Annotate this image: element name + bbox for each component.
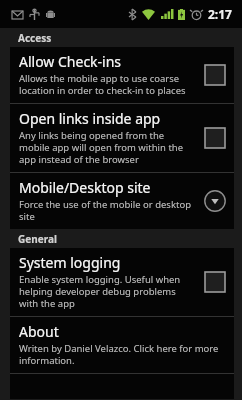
staticText: Open links inside app (19, 109, 161, 128)
button[interactable]: System logging (10, 248, 234, 316)
staticText: Enable system logging. Useful when helpi… (19, 273, 196, 310)
button[interactable]: Toggle setting (202, 125, 228, 151)
staticText: Writen by Daniel Velazco. Click here for… (19, 342, 228, 367)
staticText: General (18, 232, 57, 246)
staticText: Allow Check-ins (19, 52, 122, 71)
button[interactable]: About (10, 317, 234, 373)
button[interactable]: Toggle setting (202, 269, 228, 295)
staticText: Access (18, 31, 52, 45)
staticText: System logging (19, 253, 121, 272)
button[interactable]: Mobile/Desktop site (10, 173, 234, 229)
staticText: Mobile/Desktop site (19, 178, 151, 197)
button[interactable]: Toggle setting (202, 62, 228, 88)
staticText: Any links being opened from the mobile a… (19, 129, 196, 166)
staticText: 2:17 (208, 6, 232, 22)
button[interactable]: Open options (202, 188, 228, 214)
staticText: About (19, 322, 59, 341)
staticText: Force the use of the mobile or desktop s… (19, 198, 196, 223)
staticText: Allows the mobile app to use coarse loca… (19, 72, 196, 97)
button[interactable]: Open links inside app (10, 104, 234, 172)
button[interactable]: Allow Check-ins (10, 47, 234, 103)
